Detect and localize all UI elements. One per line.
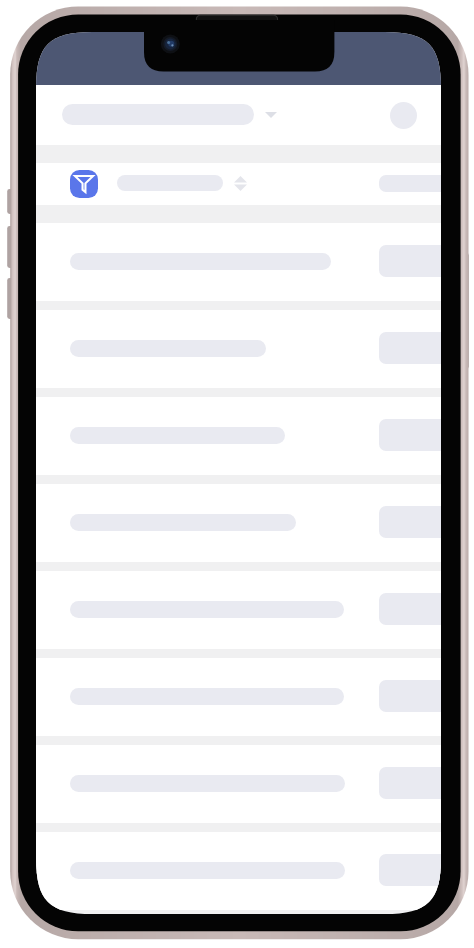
button[interactable]: Account [390,102,417,129]
button[interactable] [36,310,441,388]
button[interactable] [36,571,441,649]
button[interactable]: Sort [234,176,247,191]
button[interactable] [36,223,441,301]
button[interactable] [36,484,441,562]
button[interactable] [36,658,441,736]
button[interactable] [62,96,277,133]
button[interactable]: Filter [70,170,98,198]
button[interactable] [36,397,441,475]
button[interactable] [36,745,441,823]
button[interactable] [36,832,441,910]
